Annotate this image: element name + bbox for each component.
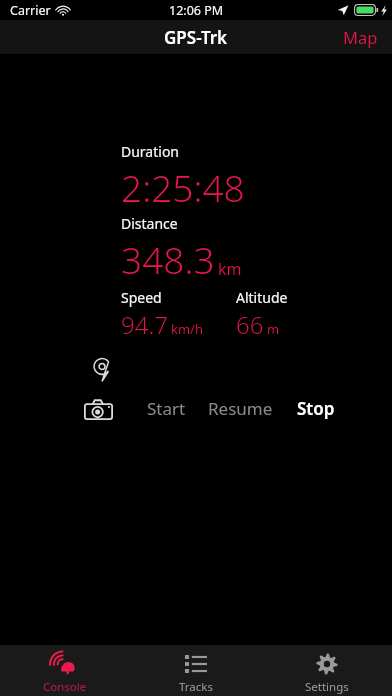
button[interactable]: Location marker [85,355,119,385]
staticText: Start [147,397,186,420]
staticText: 94.7 [121,308,168,341]
button[interactable]: Resume [200,391,281,426]
staticText: Distance [121,214,178,233]
button[interactable]: Map [329,20,392,54]
staticText: 12:06 PM [169,2,224,19]
staticText: Stop [297,397,335,420]
staticText: 2:25:48 [121,162,245,212]
staticText: Speed [121,288,162,307]
staticText: 348.3 [121,234,215,284]
staticText: km/h [171,320,203,338]
button[interactable]: Start [139,391,194,426]
staticText: GPS-Trk [164,26,228,49]
button[interactable]: Stop [289,391,343,426]
staticText: Duration [121,142,180,161]
button[interactable]: Tracks [130,645,261,696]
staticText: 66 [236,308,264,341]
staticText: Altitude [236,288,288,307]
button[interactable]: Console [0,645,130,696]
staticText: m [267,320,280,338]
button[interactable]: Settings [261,645,392,696]
button[interactable]: Take photo [82,396,114,422]
staticText: Settings [305,679,349,695]
staticText: Tracks [179,679,213,695]
staticText: Resume [208,397,273,420]
staticText: Map [343,26,378,48]
staticText: Carrier [10,2,51,19]
staticText: Console [43,679,87,695]
staticText: km [218,258,242,280]
